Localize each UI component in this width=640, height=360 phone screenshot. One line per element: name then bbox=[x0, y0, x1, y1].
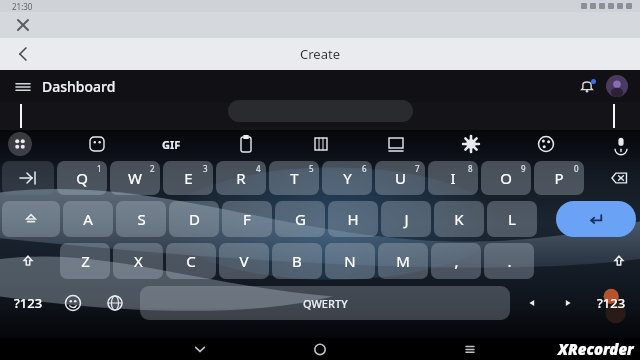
staticText: Create bbox=[300, 45, 340, 63]
button[interactable]: Translate bbox=[310, 133, 332, 155]
button[interactable]: ?123 bbox=[586, 286, 636, 320]
button[interactable]: P bbox=[534, 161, 584, 195]
staticText: 9 bbox=[521, 163, 526, 174]
button[interactable]: E bbox=[163, 161, 213, 195]
button[interactable] bbox=[228, 100, 413, 122]
staticText: X bbox=[558, 339, 568, 359]
button[interactable]: N bbox=[325, 243, 375, 279]
staticText: Recorder bbox=[568, 339, 634, 359]
staticText: QWERTY bbox=[303, 296, 348, 311]
button[interactable]: GIF bbox=[162, 137, 181, 152]
button[interactable]: X bbox=[113, 243, 163, 279]
button[interactable]: J bbox=[381, 201, 431, 237]
button[interactable]: Clipboard bbox=[235, 133, 257, 155]
staticText: H bbox=[347, 209, 359, 229]
staticText: E bbox=[184, 168, 193, 188]
staticText: X bbox=[134, 251, 143, 271]
button[interactable]: I bbox=[428, 161, 478, 195]
button[interactable]: One-handed mode bbox=[385, 133, 407, 155]
staticText: Q bbox=[76, 168, 88, 188]
button[interactable]: Voice input bbox=[610, 133, 632, 155]
staticText: D bbox=[189, 209, 200, 229]
staticText: N bbox=[344, 251, 356, 271]
button[interactable]: , bbox=[431, 243, 481, 279]
staticText: Y bbox=[343, 168, 352, 188]
button[interactable]: Recents bbox=[460, 339, 480, 359]
staticText: GIF bbox=[162, 137, 181, 152]
button[interactable]: Move cursor right bbox=[550, 286, 586, 320]
button[interactable]: Q bbox=[57, 161, 107, 195]
staticText: 2 bbox=[150, 163, 155, 174]
button[interactable]: Z bbox=[60, 243, 110, 279]
staticText: M bbox=[396, 251, 410, 271]
button[interactable]: H bbox=[328, 201, 378, 237]
button[interactable]: All apps bbox=[8, 132, 32, 156]
button[interactable]: Settings bbox=[460, 133, 482, 155]
button[interactable]: . bbox=[484, 243, 534, 279]
button[interactable]: Tab bbox=[2, 161, 54, 195]
button[interactable]: C bbox=[166, 243, 216, 279]
staticText: T bbox=[290, 168, 299, 188]
button[interactable]: Enter bbox=[556, 201, 636, 237]
staticText: ?123 bbox=[14, 294, 43, 312]
button[interactable]: Back bbox=[190, 339, 210, 359]
staticText: F bbox=[243, 209, 251, 229]
button[interactable]: B bbox=[272, 243, 322, 279]
staticText: 5 bbox=[309, 163, 314, 174]
staticText: K bbox=[454, 209, 464, 229]
button[interactable]: G bbox=[275, 201, 325, 237]
button[interactable]: Themes bbox=[535, 133, 557, 155]
staticText: A bbox=[83, 209, 93, 229]
button[interactable]: Emoji bbox=[52, 286, 94, 320]
button[interactable]: U bbox=[375, 161, 425, 195]
button[interactable]: Y bbox=[322, 161, 372, 195]
staticText: C bbox=[186, 251, 196, 271]
staticText: Z bbox=[81, 251, 90, 271]
button[interactable]: Backspace bbox=[602, 161, 636, 195]
button[interactable]: QWERTY bbox=[140, 286, 510, 320]
button[interactable]: V bbox=[219, 243, 269, 279]
button[interactable]: Notifications bbox=[578, 77, 596, 95]
staticText: 21:30 bbox=[12, 1, 33, 12]
staticText: S bbox=[137, 209, 146, 229]
button[interactable]: A bbox=[63, 201, 113, 237]
button[interactable]: Profile bbox=[606, 75, 628, 97]
button[interactable]: T bbox=[269, 161, 319, 195]
button[interactable]: Caps lock bbox=[2, 201, 60, 237]
button[interactable]: Home bbox=[310, 339, 330, 359]
button[interactable]: Change language bbox=[94, 286, 136, 320]
staticText: 4 bbox=[256, 163, 261, 174]
staticText: L bbox=[508, 209, 516, 229]
staticText: J bbox=[404, 209, 409, 229]
staticText: , bbox=[454, 251, 459, 271]
staticText: 1 bbox=[97, 163, 102, 174]
staticText: G bbox=[295, 209, 306, 229]
staticText: U bbox=[395, 168, 406, 188]
button[interactable]: O bbox=[481, 161, 531, 195]
staticText: ?123 bbox=[597, 294, 626, 312]
staticText: 0 bbox=[574, 163, 579, 174]
staticText: V bbox=[239, 251, 249, 271]
button[interactable]: M bbox=[378, 243, 428, 279]
button[interactable]: Shift right bbox=[602, 243, 636, 279]
button[interactable]: Menu bbox=[14, 78, 32, 96]
staticText: 6 bbox=[362, 163, 367, 174]
staticText: Dashboard bbox=[42, 77, 116, 96]
button[interactable]: K bbox=[434, 201, 484, 237]
staticText: 3 bbox=[203, 163, 208, 174]
button[interactable]: L bbox=[487, 201, 537, 237]
button[interactable]: Move cursor left bbox=[514, 286, 550, 320]
button[interactable]: Stickers bbox=[86, 133, 108, 155]
button[interactable]: F bbox=[222, 201, 272, 237]
staticText: R bbox=[236, 168, 246, 188]
button[interactable]: S bbox=[116, 201, 166, 237]
button[interactable]: ?123 bbox=[4, 286, 52, 320]
button[interactable]: W bbox=[110, 161, 160, 195]
button[interactable]: Close bbox=[12, 14, 34, 36]
staticText: 8 bbox=[468, 163, 473, 174]
staticText: P bbox=[554, 168, 564, 188]
button[interactable]: Back bbox=[12, 42, 36, 66]
button[interactable]: Shift bbox=[2, 243, 54, 279]
button[interactable]: R bbox=[216, 161, 266, 195]
button[interactable]: D bbox=[169, 201, 219, 237]
